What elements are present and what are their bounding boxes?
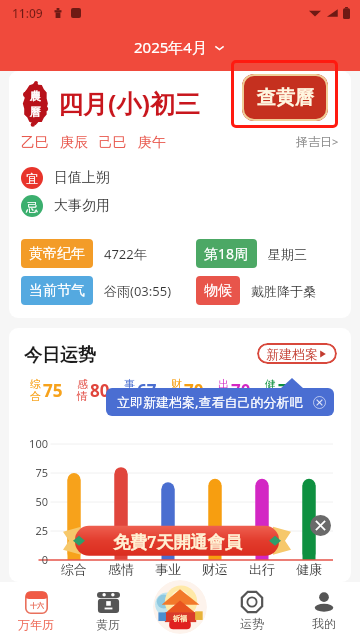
button[interactable]: 立即新建档案,查看自己的分析吧 bbox=[106, 388, 334, 416]
staticText: 当前节气 bbox=[29, 282, 85, 300]
staticText: 今日运势 bbox=[24, 344, 96, 367]
staticText: 择吉日 bbox=[296, 134, 332, 149]
button[interactable]: 关闭 bbox=[310, 515, 331, 536]
staticText: 大事勿用 bbox=[54, 197, 110, 215]
staticText: 70 bbox=[278, 379, 298, 402]
staticText: 黄帝纪年 bbox=[29, 245, 85, 263]
staticText: 事业 bbox=[155, 561, 181, 577]
staticText: 万年历 bbox=[18, 617, 54, 632]
staticText: 我的 bbox=[312, 616, 336, 631]
staticText: 農 曆 bbox=[30, 89, 41, 119]
button[interactable]: 新建档案 bbox=[257, 343, 337, 364]
staticText: 50 bbox=[15, 494, 48, 509]
staticText: 0 bbox=[15, 552, 48, 567]
button[interactable]: 免費7天開通會員 bbox=[63, 521, 291, 561]
staticText: 戴胜降于桑 bbox=[251, 283, 316, 299]
button[interactable]: 择吉日 bbox=[296, 134, 339, 149]
staticText: 70 bbox=[184, 379, 204, 402]
staticText: 运势 bbox=[240, 616, 264, 631]
staticText: 70 bbox=[231, 379, 251, 402]
button[interactable]: 2025年4月 bbox=[134, 37, 226, 57]
staticText: 新建档案 bbox=[266, 346, 318, 362]
staticText: 健 康 bbox=[265, 377, 276, 403]
staticText: > bbox=[332, 134, 339, 149]
staticText: 事 业 bbox=[124, 377, 135, 403]
staticText: 11:09 bbox=[12, 5, 43, 21]
staticText: 出 行 bbox=[218, 377, 229, 403]
button[interactable]: 我的 bbox=[288, 582, 360, 640]
button[interactable]: 运势 bbox=[216, 582, 288, 640]
button[interactable]: 十六 bbox=[0, 582, 72, 640]
button[interactable]: 黄历 bbox=[72, 582, 144, 640]
staticText: 4722年 bbox=[104, 245, 147, 263]
staticText: 67 bbox=[137, 379, 157, 402]
staticText: 忌 bbox=[26, 199, 38, 214]
staticText: 立即新建档案,查看自己的分析吧 bbox=[117, 393, 303, 411]
staticText: 日值上朔 bbox=[54, 169, 110, 187]
staticText: 宜 bbox=[26, 171, 38, 186]
staticText: 星期三 bbox=[268, 246, 307, 262]
staticText: 谷雨(03:55) bbox=[104, 282, 172, 300]
staticText: 综合 bbox=[61, 561, 87, 577]
staticText: 80 bbox=[90, 379, 110, 402]
staticText: 75 bbox=[43, 379, 63, 402]
staticText: 物候 bbox=[204, 282, 232, 300]
staticText: 四月(小)初三 bbox=[58, 86, 200, 120]
staticText: 综 合 bbox=[30, 377, 41, 403]
staticText: 财 运 bbox=[171, 377, 182, 403]
staticText: 免費7天開通會員 bbox=[113, 530, 242, 553]
staticText: 75 bbox=[15, 465, 48, 480]
staticText: 十六 bbox=[30, 601, 44, 610]
staticText: 乙巳 庚辰 己巳 庚午 bbox=[21, 132, 166, 151]
button[interactable]: 查黄曆 bbox=[231, 60, 338, 128]
staticText: 查黄曆 bbox=[257, 86, 314, 110]
staticText: 感 情 bbox=[77, 377, 88, 403]
staticText: 2025年4月 bbox=[134, 37, 207, 57]
staticText: 100 bbox=[15, 436, 48, 451]
staticText: 感情 bbox=[108, 561, 134, 577]
staticText: 祈福 bbox=[173, 614, 187, 623]
staticText: 健康 bbox=[296, 561, 322, 577]
staticText: 25 bbox=[15, 523, 48, 538]
staticText: 黄历 bbox=[96, 617, 120, 632]
staticText: 第18周 bbox=[204, 244, 249, 263]
staticText: 出行 bbox=[249, 561, 275, 577]
button[interactable]: 祈福 bbox=[153, 580, 207, 634]
staticText: 财运 bbox=[202, 561, 228, 577]
